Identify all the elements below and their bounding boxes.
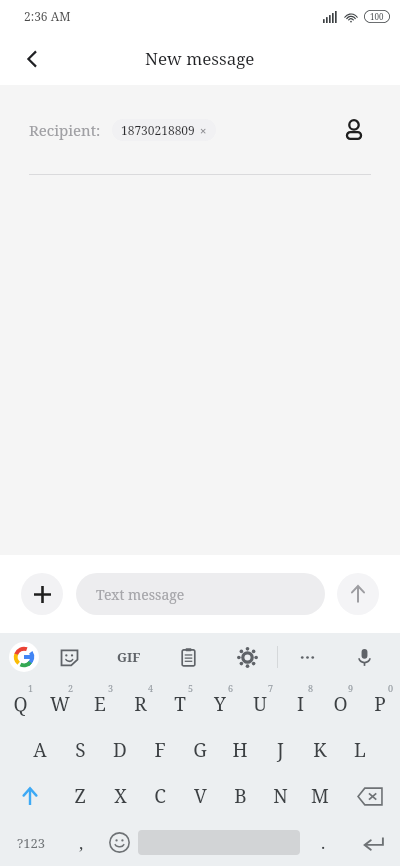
button[interactable]: J	[260, 727, 300, 773]
button[interactable]: D	[100, 727, 140, 773]
staticText: R	[134, 691, 147, 717]
button[interactable]: H	[220, 727, 260, 773]
button[interactable]: I	[280, 681, 320, 727]
staticText: 2:36 AM	[24, 8, 71, 24]
staticText: 100	[370, 11, 384, 22]
button[interactable]: G	[180, 727, 220, 773]
staticText: N	[273, 783, 288, 809]
button[interactable]: X	[100, 773, 140, 819]
button[interactable]: Shift	[0, 773, 60, 819]
staticText: S	[75, 737, 86, 763]
button[interactable]: Y	[200, 681, 240, 727]
button[interactable]: T	[160, 681, 200, 727]
staticText: W	[50, 691, 70, 717]
staticText: New message	[145, 47, 255, 70]
button[interactable]: Z	[60, 773, 100, 819]
button[interactable]: Choose contact	[337, 113, 371, 147]
button[interactable]: E	[80, 681, 120, 727]
button[interactable]: A	[20, 727, 60, 773]
staticText: GIF	[117, 648, 141, 666]
staticText: 1	[28, 682, 34, 694]
button[interactable]: N	[260, 773, 300, 819]
staticText: Text message	[96, 585, 185, 604]
staticText: 6	[228, 682, 234, 694]
staticText: T	[174, 691, 186, 717]
staticText: 9	[348, 682, 354, 694]
button[interactable]: Back	[10, 37, 54, 81]
button[interactable]: O	[320, 681, 360, 727]
staticText: Z	[74, 783, 86, 809]
button[interactable]: P	[360, 681, 400, 727]
button[interactable]: 18730218809	[112, 119, 216, 141]
button[interactable]: K	[300, 727, 340, 773]
button[interactable]: V	[180, 773, 220, 819]
button[interactable]: GIF	[99, 633, 159, 681]
button[interactable]: ,	[62, 819, 100, 866]
staticText: 7	[268, 682, 274, 694]
staticText: 8	[308, 682, 314, 694]
button[interactable]: Clipboard	[159, 633, 218, 681]
staticText: A	[33, 737, 47, 763]
staticText: F	[154, 737, 166, 763]
staticText: H	[232, 737, 248, 763]
button[interactable]: Voice input	[337, 633, 391, 681]
staticText: 18730218809	[121, 122, 195, 138]
staticText: B	[234, 783, 247, 809]
staticText: P	[374, 691, 386, 717]
staticText: 0	[388, 682, 394, 694]
staticText: J	[277, 737, 284, 763]
button[interactable]: W	[40, 681, 80, 727]
button[interactable]: L	[340, 727, 380, 773]
staticText: L	[354, 737, 366, 763]
button[interactable]: B	[220, 773, 260, 819]
button[interactable]: Settings	[218, 633, 277, 681]
button[interactable]: Backspace	[340, 773, 400, 819]
staticText: E	[94, 691, 106, 717]
staticText: ,	[79, 831, 84, 854]
button[interactable]: More options	[278, 633, 337, 681]
button[interactable]: C	[140, 773, 180, 819]
staticText: ×	[200, 123, 207, 138]
staticText: Q	[13, 691, 28, 717]
button[interactable]: Text message	[76, 573, 325, 615]
button[interactable]: Q	[0, 681, 40, 727]
staticText: 4	[148, 682, 154, 694]
staticText: G	[193, 737, 207, 763]
button[interactable]: R	[120, 681, 160, 727]
button[interactable]: Google search	[9, 642, 39, 672]
button[interactable]: .	[300, 819, 346, 866]
button[interactable]: Add attachment	[21, 573, 63, 615]
staticText: K	[313, 737, 327, 763]
staticText: Y	[214, 691, 226, 717]
staticText: X	[114, 783, 127, 809]
staticText: ?123	[17, 834, 45, 852]
staticText: I	[297, 691, 304, 717]
button[interactable]: S	[60, 727, 100, 773]
staticText: V	[194, 783, 207, 809]
staticText: 5	[188, 682, 194, 694]
staticText: 3	[108, 682, 114, 694]
staticText: M	[311, 783, 329, 809]
button[interactable]: Send	[337, 573, 379, 615]
button[interactable]: Enter	[346, 819, 400, 866]
button[interactable]: Stickers	[39, 633, 99, 681]
button[interactable]: F	[140, 727, 180, 773]
staticText: .	[321, 831, 326, 854]
staticText: Recipient:	[29, 120, 101, 140]
button[interactable]: ?123	[0, 819, 62, 866]
staticText: U	[253, 691, 267, 717]
staticText: 2	[68, 682, 74, 694]
button[interactable]: M	[300, 773, 340, 819]
button[interactable]: Emoji	[100, 819, 138, 866]
staticText: C	[154, 783, 166, 809]
staticText: O	[333, 691, 348, 717]
staticText: D	[113, 737, 127, 763]
button[interactable]: U	[240, 681, 280, 727]
